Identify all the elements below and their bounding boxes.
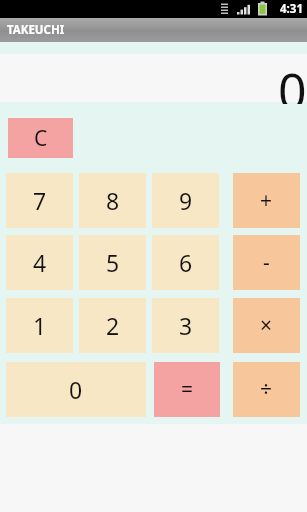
staticText: TAKEUCHI <box>7 22 65 38</box>
button[interactable]: 2 <box>79 298 146 353</box>
button[interactable]: 0 <box>6 362 146 417</box>
staticText: - <box>263 248 270 277</box>
staticText: × <box>260 311 273 340</box>
staticText: 0 <box>69 374 83 405</box>
button[interactable]: + <box>233 173 300 228</box>
staticText: 1 <box>33 310 47 341</box>
button[interactable]: = <box>154 362 220 417</box>
button[interactable]: 3 <box>152 298 219 353</box>
button[interactable]: - <box>233 235 300 290</box>
button[interactable]: 5 <box>79 235 146 290</box>
staticText: = <box>181 375 194 404</box>
staticText: 3 <box>179 310 193 341</box>
staticText: 8 <box>106 185 120 216</box>
staticText: 7 <box>33 185 47 216</box>
staticText: 2 <box>106 310 120 341</box>
staticText: + <box>260 186 273 215</box>
staticText: 4:31 <box>280 1 303 17</box>
staticText: ÷ <box>260 375 273 404</box>
button[interactable]: 4 <box>6 235 73 290</box>
button[interactable]: 1 <box>6 298 73 353</box>
staticText: 9 <box>179 185 193 216</box>
button[interactable]: C <box>8 118 73 158</box>
staticText: 0 <box>278 56 307 104</box>
button[interactable]: 9 <box>152 173 219 228</box>
staticText: 4 <box>33 247 47 278</box>
button[interactable]: 6 <box>152 235 219 290</box>
button[interactable]: × <box>233 298 300 353</box>
button[interactable]: ÷ <box>233 362 300 417</box>
staticText: 6 <box>179 247 193 278</box>
button[interactable]: 7 <box>6 173 73 228</box>
staticText: 5 <box>106 247 120 278</box>
button[interactable]: 8 <box>79 173 146 228</box>
staticText: C <box>34 124 48 153</box>
